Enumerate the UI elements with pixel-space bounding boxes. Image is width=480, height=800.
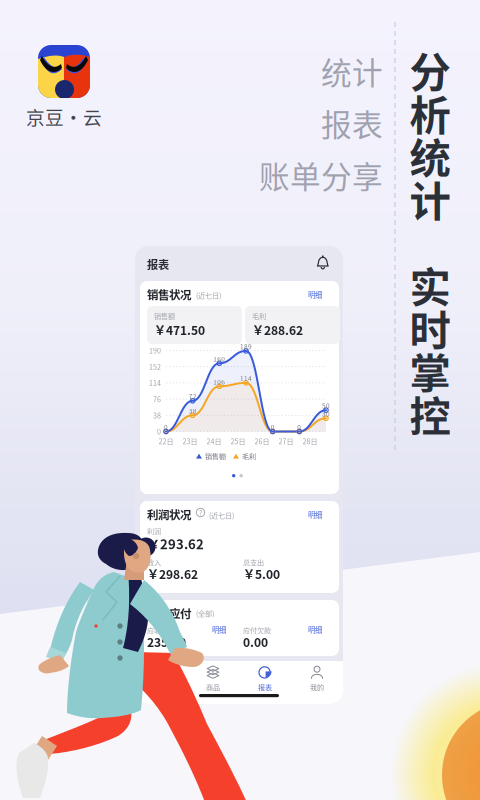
staticText: 25日 [230,436,245,446]
button[interactable]: 应用 [135,665,187,692]
staticText: 明细 [308,289,322,300]
staticText: 应收欠款 [147,625,175,635]
staticText: 24日 [206,436,221,446]
button[interactable]: 明细 [308,624,322,635]
staticText: 毛利 [242,451,256,461]
staticText: 28日 [302,436,317,446]
staticText: 报表 [147,256,169,272]
button[interactable]: 明细 [308,509,322,520]
staticText: 50 [322,401,330,410]
staticText: 应收应付 [147,605,191,622]
staticText: 26日 [254,436,269,446]
staticText: 利润状况 [147,506,191,523]
button[interactable]: 商品 [187,665,239,692]
staticText: 235.00 [147,633,186,650]
staticText: 总支出 [243,557,264,567]
button[interactable]: 我的 [291,665,343,692]
staticText: 30 [322,409,330,418]
staticText: 23日 [182,436,197,446]
staticText: 报表 [258,682,272,692]
staticText: 114 [149,378,161,388]
staticText: 应付欠款 [243,625,271,635]
staticText: 0.00 [243,633,268,650]
staticText: 0 [271,422,275,432]
staticText: 22日 [158,436,173,446]
staticText: 72 [189,392,197,401]
staticText: 114 [240,374,252,383]
staticText: 收入 [147,557,161,567]
staticText: 利润 [147,526,161,536]
staticText: 152 [149,362,161,372]
staticText: 38 [153,410,161,420]
staticText: 统 [409,126,450,185]
staticText: ? [199,507,202,517]
button[interactable]: 明细 [212,624,226,635]
staticText: 掌 [409,341,450,400]
staticText: 销售额 [154,311,175,321]
staticText: 0 [157,426,161,437]
staticText: (近七日) [209,510,234,520]
staticText: (全部) [196,608,214,618]
staticText: ￥298.62 [147,565,198,582]
staticText: 计 [409,169,450,228]
staticText: 毛利 [252,311,266,321]
staticText: 分 [409,40,450,99]
staticText: 189 [240,342,252,351]
staticText: 统计 [321,49,383,93]
staticText: ￥471.50 [154,321,205,338]
staticText: 38 [189,406,197,415]
staticText: ￥293.62 [147,534,204,553]
staticText: 27日 [278,436,293,446]
staticText: 销售额 [205,451,226,461]
staticText: 190 [149,345,161,356]
staticText: (近七日) [196,290,221,300]
button[interactable]: 通知 [316,255,330,270]
staticText: 控 [409,384,450,443]
staticText: 账单分享 [259,153,383,197]
staticText: 销售状况 [147,286,191,303]
staticText: 商品 [206,682,220,692]
staticText: 实 [409,255,450,314]
staticText: 明细 [308,509,322,520]
staticText: 76 [153,394,161,404]
staticText: 我的 [310,682,324,692]
staticText: 报表 [321,101,383,145]
staticText: ￥288.62 [252,321,303,338]
staticText: 明细 [212,624,226,635]
staticText: 京豆·云 [26,103,102,130]
staticText: 0 [164,422,168,432]
staticText: ￥5.00 [243,565,280,582]
staticText: 时 [409,298,450,357]
staticText: 析 [409,83,450,142]
staticText: 0 [297,422,301,432]
button[interactable]: 明细 [308,289,322,300]
staticText: 160 [213,354,225,363]
staticText: 明细 [308,624,322,635]
button[interactable]: 报表 [239,665,291,692]
staticText: 106 [213,377,225,386]
